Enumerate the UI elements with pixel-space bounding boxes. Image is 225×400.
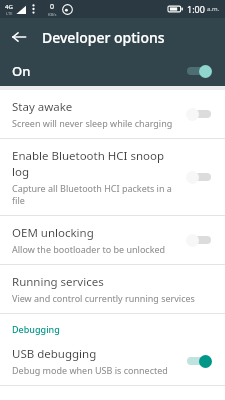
staticText: Allow the bootloader to be unlocked <box>12 243 166 255</box>
button[interactable]: Switch off <box>185 169 213 185</box>
staticText: 1:00 <box>187 3 205 15</box>
staticText: USB debugging <box>12 346 97 362</box>
staticText: Stay awake <box>12 99 73 115</box>
button[interactable]: Switch on <box>185 353 213 369</box>
staticText: OEM unlocking <box>12 225 94 241</box>
staticText: Capture all Bluetooth HCI packets in a f… <box>12 182 177 206</box>
staticText: KB/s <box>48 12 57 17</box>
staticText: Developer options <box>42 28 165 47</box>
button[interactable]: Stay awake <box>0 90 225 138</box>
button[interactable]: Switch off <box>185 232 213 248</box>
staticText: 4G <box>5 3 13 11</box>
button[interactable]: Running services <box>0 265 225 313</box>
staticText: Debug mode when USB is connected <box>12 364 168 376</box>
staticText: On <box>12 62 31 80</box>
staticText: Screen will never sleep while charging <box>12 117 173 129</box>
button[interactable]: On <box>0 56 225 86</box>
button[interactable]: OEM unlocking <box>0 216 225 264</box>
staticText: LTE <box>6 11 13 16</box>
staticText: Enable Bluetooth HCI snoop log <box>12 148 177 180</box>
button[interactable]: Enable Bluetooth HCI snoop log <box>0 139 225 215</box>
button[interactable]: Switch off <box>185 106 213 122</box>
staticText: a.m. <box>207 5 220 13</box>
staticText: Running services <box>12 274 104 290</box>
button[interactable]: Switch on <box>185 63 213 79</box>
staticText: Debugging <box>12 323 60 335</box>
button[interactable]: Back <box>0 18 38 56</box>
button[interactable]: USB debugging <box>0 337 225 385</box>
staticText: View and control currently running servi… <box>12 292 195 304</box>
staticText: 0 <box>50 2 55 12</box>
